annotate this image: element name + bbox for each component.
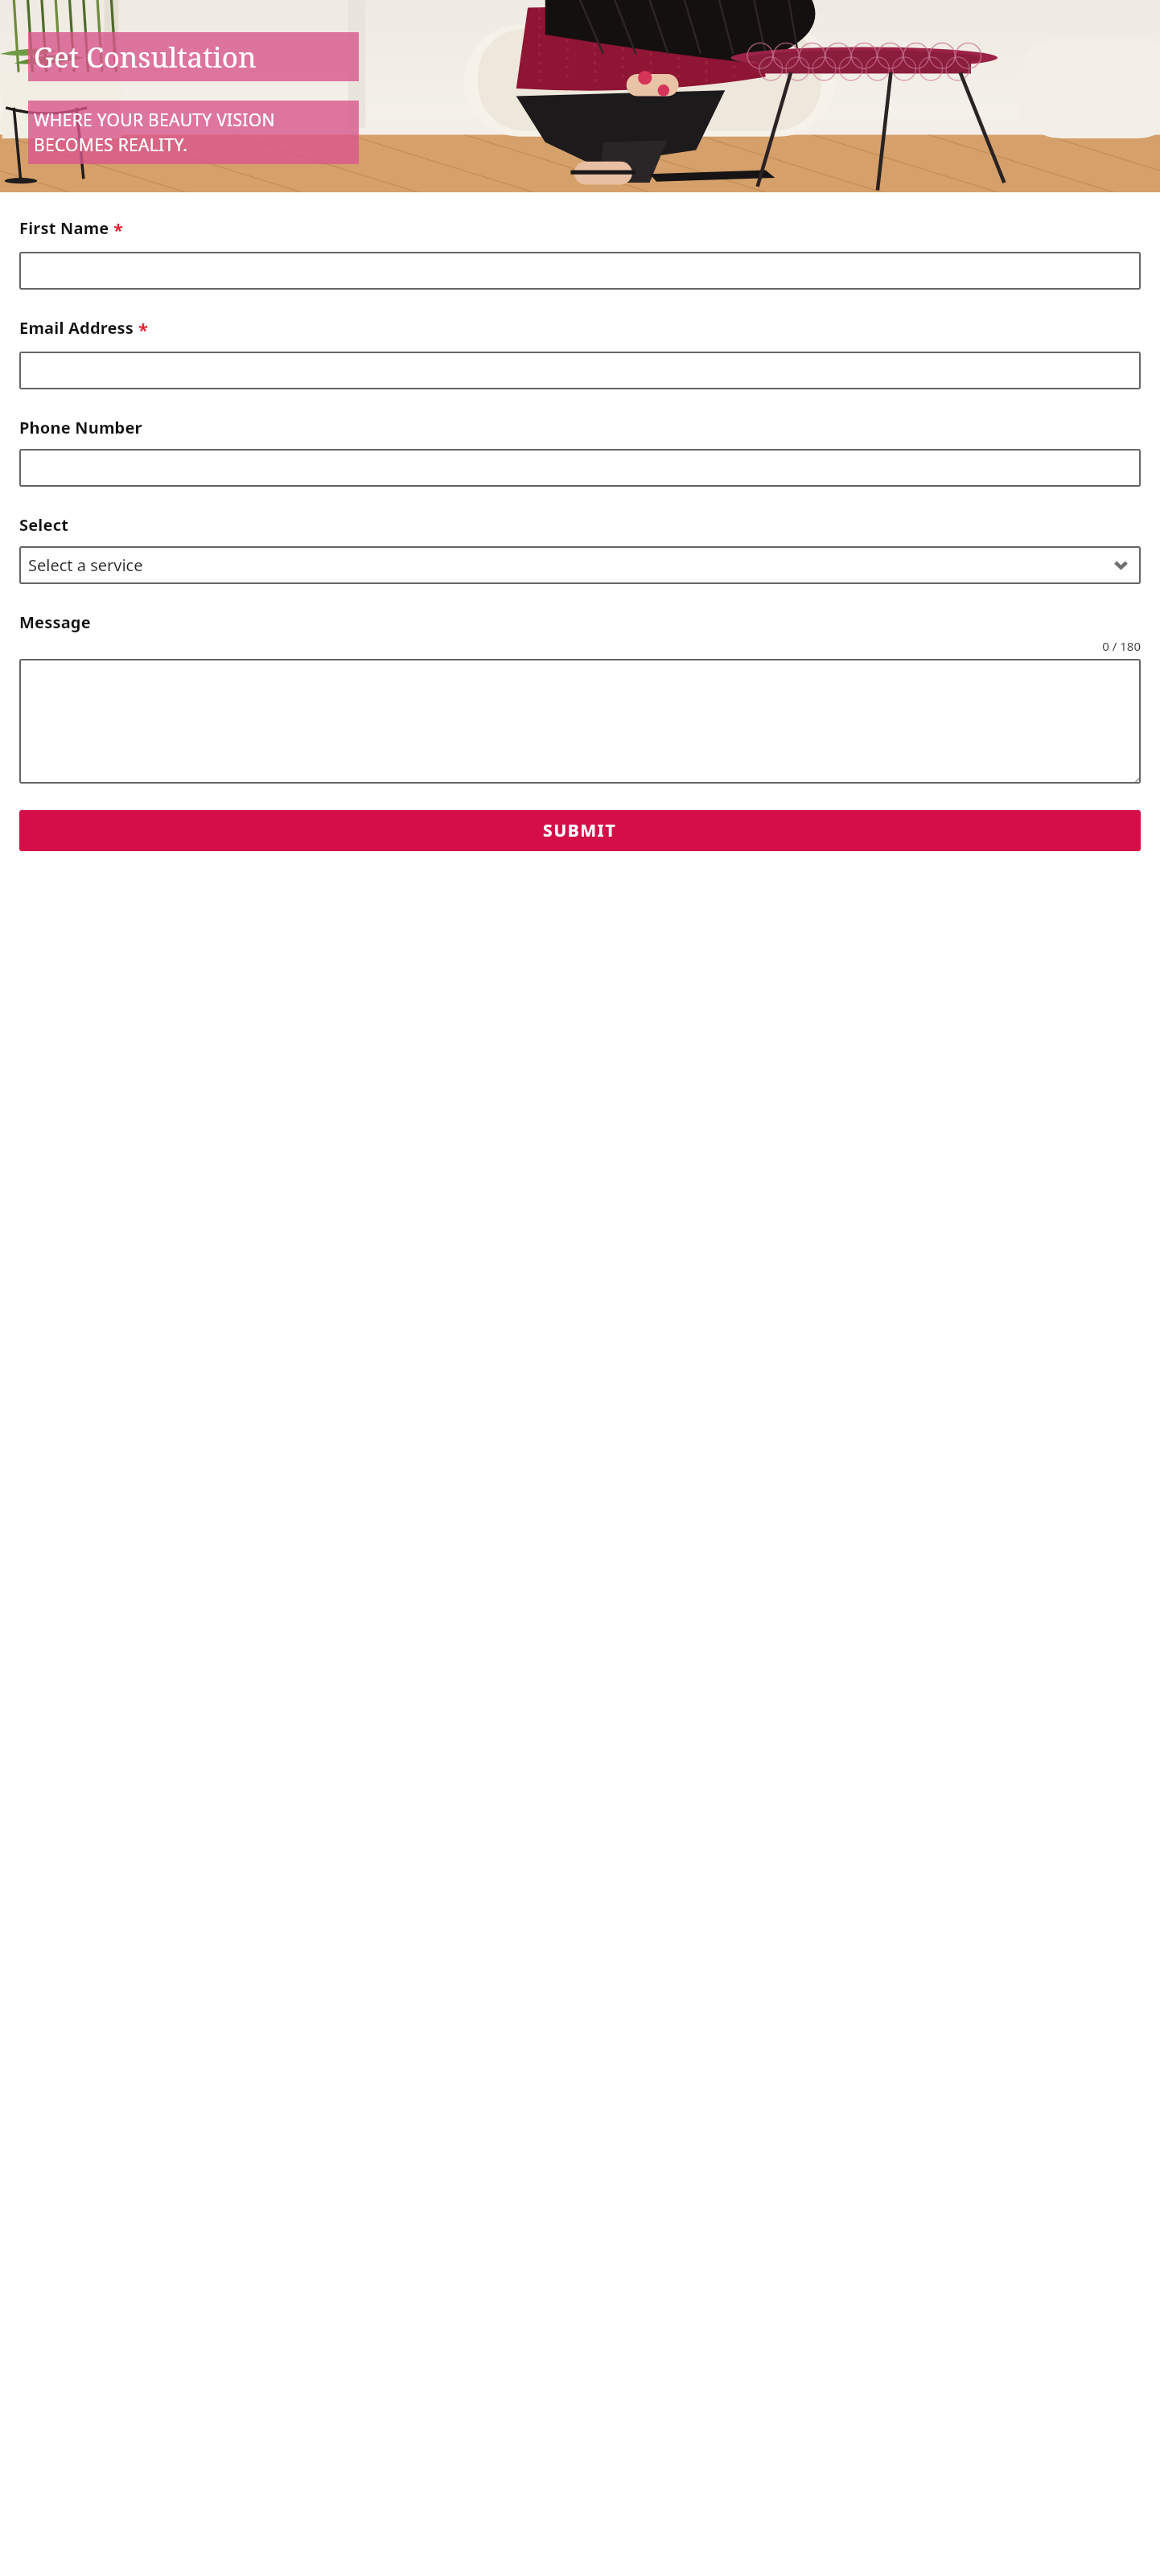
button[interactable] (19, 449, 1141, 487)
staticText: 0 / 180 (19, 638, 1141, 654)
staticText: First Name (19, 217, 109, 239)
button[interactable] (19, 252, 1141, 290)
button[interactable]: SUBMIT (19, 810, 1141, 851)
staticText: Message (19, 611, 91, 633)
staticText: Select a service (28, 554, 143, 576)
staticText: SUBMIT (543, 819, 617, 842)
button[interactable]: Select a service (19, 546, 1141, 584)
staticText: * (113, 217, 123, 241)
staticText: Email Address (19, 317, 134, 339)
staticText: Phone Number (19, 417, 142, 438)
other: Open service list (1114, 558, 1128, 572)
staticText: * (138, 317, 148, 341)
button[interactable] (19, 659, 1141, 784)
staticText: Get Consultation (34, 38, 257, 76)
button[interactable] (19, 352, 1141, 389)
staticText: Select (19, 514, 69, 536)
staticText: WHERE YOUR BEAUTY VISION BECOMES REALITY… (34, 109, 356, 156)
